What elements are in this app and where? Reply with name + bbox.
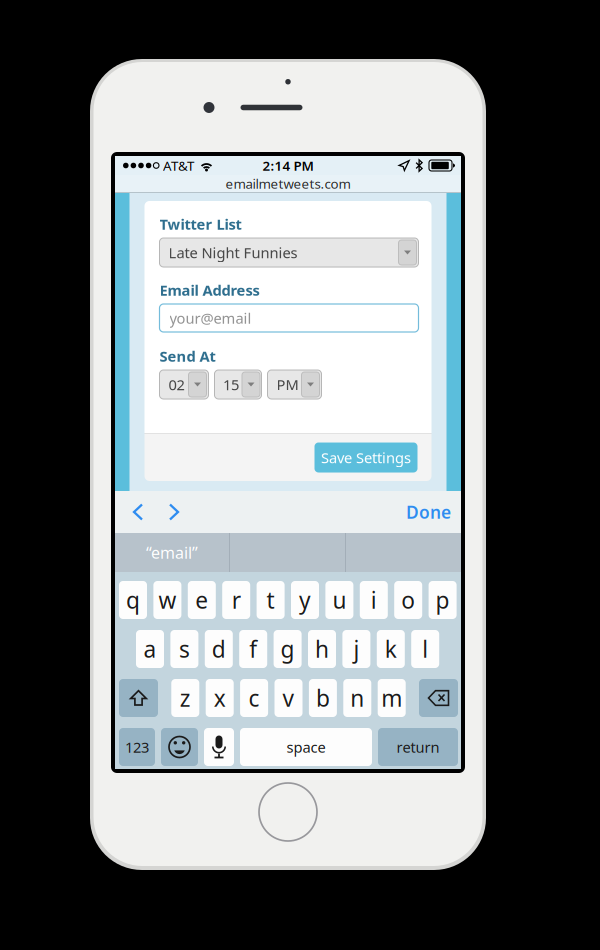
staticText: y — [299, 585, 311, 615]
staticText: h — [315, 634, 329, 664]
button[interactable]: h — [308, 630, 336, 668]
button[interactable]: Save Settings — [314, 442, 417, 472]
button[interactable]: i — [360, 581, 388, 619]
button[interactable]: g — [274, 630, 302, 668]
button[interactable]: w — [153, 581, 181, 619]
button[interactable]: Emoji — [161, 728, 198, 766]
button[interactable]: Done — [394, 491, 461, 533]
button[interactable]: your@email — [159, 304, 418, 332]
staticText: c — [249, 683, 260, 713]
staticText: return — [396, 737, 439, 757]
staticText: r — [232, 585, 241, 615]
button[interactable]: r — [222, 581, 250, 619]
staticText: your@email — [169, 308, 251, 328]
button[interactable]: 15 — [214, 370, 261, 399]
button[interactable]: c — [240, 679, 268, 717]
button[interactable]: Shift — [119, 679, 158, 717]
button[interactable]: t — [257, 581, 285, 619]
button[interactable]: return — [378, 728, 458, 766]
staticText: u — [332, 585, 346, 615]
staticText: w — [158, 585, 176, 615]
staticText: i — [371, 585, 377, 615]
staticText: Save Settings — [321, 448, 411, 467]
staticText: o — [401, 585, 415, 615]
button[interactable]: Dictation — [204, 728, 234, 766]
button[interactable]: PM — [267, 370, 321, 399]
staticText: Twitter List — [159, 214, 241, 234]
button[interactable]: j — [342, 630, 370, 668]
button[interactable]: l — [411, 630, 439, 668]
button[interactable]: v — [274, 679, 302, 717]
staticText: b — [316, 683, 330, 713]
staticText: k — [385, 634, 397, 664]
button[interactable]: y — [291, 581, 319, 619]
staticText: AT&T — [163, 157, 194, 174]
button[interactable]: 123 — [119, 728, 155, 766]
staticText: t — [267, 585, 275, 615]
staticText: z — [180, 683, 191, 713]
button[interactable]: u — [325, 581, 353, 619]
staticText: l — [422, 634, 428, 664]
button[interactable]: Late Night Funnies — [159, 238, 418, 267]
button[interactable]: n — [343, 679, 371, 717]
staticText: p — [436, 585, 450, 615]
staticText: 15 — [223, 375, 239, 394]
staticText: e — [195, 585, 208, 615]
staticText: PM — [276, 375, 298, 394]
button[interactable]: space — [240, 728, 372, 766]
button[interactable]: 02 — [159, 370, 208, 399]
button[interactable]: b — [309, 679, 337, 717]
button[interactable]: z — [171, 679, 199, 717]
staticText: d — [212, 634, 226, 664]
staticText: a — [143, 634, 156, 664]
button[interactable]: m — [378, 679, 406, 717]
staticText: 02 — [168, 375, 184, 394]
staticText: 2:14 PM — [262, 157, 313, 174]
staticText: f — [249, 634, 257, 664]
button[interactable]: “email” — [115, 533, 229, 572]
staticText: Email Address — [159, 280, 259, 300]
button[interactable]: a — [136, 630, 164, 668]
staticText: Late Night Funnies — [168, 243, 297, 262]
button[interactable]: k — [377, 630, 405, 668]
button[interactable]: o — [394, 581, 422, 619]
button[interactable]: f — [239, 630, 267, 668]
button[interactable]: x — [206, 679, 234, 717]
staticText: j — [353, 634, 359, 664]
staticText: emailmetweets.com — [225, 175, 350, 192]
staticText: space — [286, 737, 325, 757]
button[interactable]: p — [429, 581, 457, 619]
staticText: g — [281, 634, 295, 664]
staticText: “email” — [146, 542, 198, 563]
button[interactable]: Next field — [156, 491, 192, 533]
staticText: s — [179, 634, 190, 664]
button[interactable]: d — [205, 630, 233, 668]
button[interactable]: s — [170, 630, 198, 668]
staticText: Done — [406, 500, 451, 523]
staticText: x — [214, 683, 226, 713]
button[interactable]: q — [119, 581, 147, 619]
button[interactable]: e — [188, 581, 216, 619]
staticText: q — [126, 585, 140, 615]
staticText: m — [381, 683, 402, 713]
button[interactable]: Delete — [419, 679, 458, 717]
staticText: Send At — [159, 346, 215, 366]
button[interactable]: Previous field — [120, 491, 156, 533]
staticText: 123 — [125, 737, 149, 757]
staticText: n — [350, 683, 364, 713]
staticText: v — [282, 683, 294, 713]
